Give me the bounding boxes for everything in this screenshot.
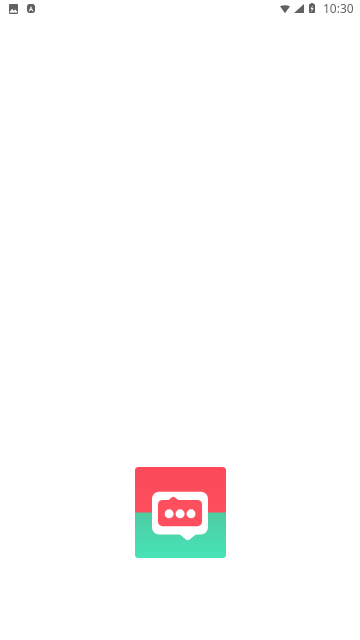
button[interactable]: Chat app logo [135, 467, 226, 558]
staticText: 10:30 [323, 0, 354, 16]
